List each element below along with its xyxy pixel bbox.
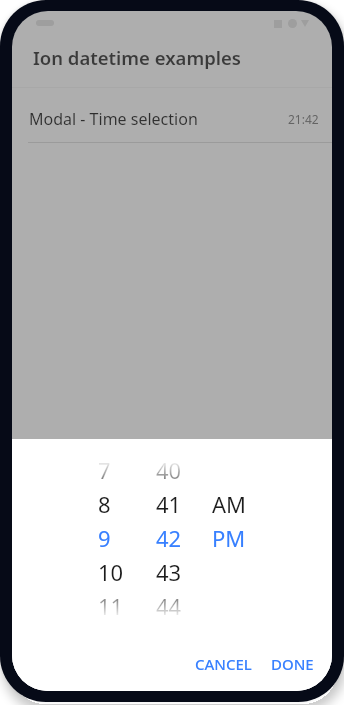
staticText: 8 [98,489,111,519]
staticText: PM [212,523,246,553]
button[interactable]: 8 [98,489,156,519]
button[interactable]: 7 [98,455,156,485]
staticText: 7 [98,455,111,485]
staticText: AM [212,489,247,519]
button[interactable]: DONE [262,649,322,679]
staticText: 42 [156,523,182,553]
staticText: 10 [98,557,124,587]
button[interactable]: 41 [156,489,214,519]
staticText: Modal - Time selection [29,108,198,130]
button[interactable]: 40 [156,455,214,485]
button[interactable]: 9 [98,523,156,553]
staticText: 9 [98,523,111,553]
button[interactable]: 44 [156,591,214,621]
button[interactable]: 11 [98,591,156,621]
button[interactable]: 10 [98,557,156,587]
button[interactable]: 43 [156,557,214,587]
staticText: 11 [98,591,124,621]
button[interactable]: PM [212,523,270,553]
button[interactable]: Modal - Time selection [12,88,332,143]
staticText: CANCEL [195,654,252,674]
button[interactable]: AM [212,489,270,519]
staticText: 21:42 [288,111,319,127]
button[interactable]: CANCEL [182,649,264,679]
staticText: DONE [271,654,314,674]
staticText: 40 [156,455,182,485]
staticText: 43 [156,557,182,587]
staticText: 44 [156,591,182,621]
button[interactable]: 42 [156,523,214,553]
staticText: 41 [156,489,182,519]
staticText: Ion datetime examples [33,45,241,70]
